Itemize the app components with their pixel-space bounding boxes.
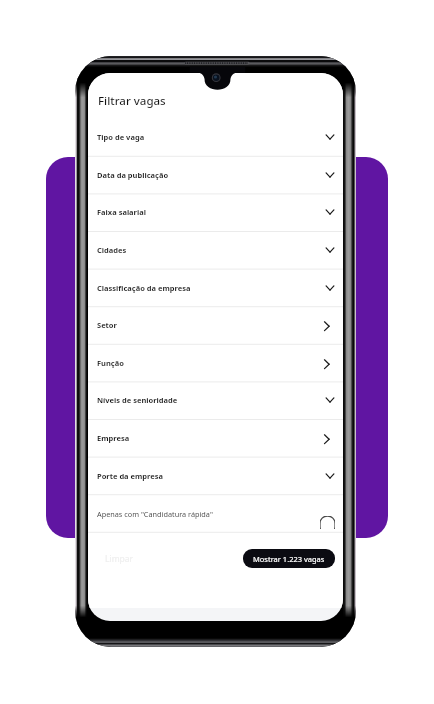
staticText: Limpar	[105, 553, 134, 565]
button[interactable]: Limpar	[102, 550, 137, 568]
button[interactable]: Função	[88, 345, 343, 382]
staticText: Função	[97, 358, 124, 368]
staticText: Data da publicação	[97, 170, 169, 180]
button[interactable]: Mostrar 1.223 vagas	[243, 549, 335, 568]
button[interactable]: Data da publicação	[88, 157, 343, 194]
staticText: Tipo de vaga	[97, 132, 145, 142]
button[interactable]: Cidades	[88, 232, 343, 269]
other: Candidatura rápida toggle	[320, 516, 335, 529]
button[interactable]: Tipo de vaga	[88, 119, 343, 156]
staticText: Classificação da empresa	[97, 283, 191, 293]
staticText: Cidades	[97, 245, 127, 255]
staticText: Empresa	[97, 433, 130, 443]
staticText: Apenas com "Candidatura rápida"	[97, 509, 213, 519]
button[interactable]: Setor	[88, 307, 343, 344]
button[interactable]: Classificação da empresa	[88, 270, 343, 307]
button[interactable]: Níveis de senioridade	[88, 382, 343, 419]
button[interactable]: Faixa salarial	[88, 194, 343, 231]
staticText: Setor	[97, 320, 117, 330]
staticText: Faixa salarial	[97, 207, 146, 217]
button[interactable]: Porte da empresa	[88, 458, 343, 495]
staticText: Filtrar vagas	[98, 93, 166, 109]
button[interactable]: Empresa	[88, 420, 343, 457]
staticText: Porte da empresa	[97, 471, 164, 481]
staticText: Níveis de senioridade	[97, 395, 178, 405]
button[interactable]: Apenas com "Candidatura rápida"	[88, 495, 343, 532]
staticText: Mostrar 1.223 vagas	[253, 554, 325, 564]
